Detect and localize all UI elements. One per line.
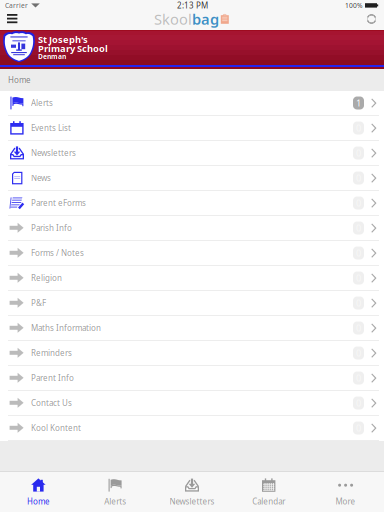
staticText: Parent Info — [31, 373, 74, 383]
button[interactable]: Alerts — [77, 472, 154, 512]
button[interactable]: Events List — [0, 116, 384, 141]
staticText: 1 — [356, 97, 361, 109]
button[interactable]: Home — [0, 472, 77, 512]
staticText: Carrier — [5, 1, 28, 10]
staticText: Calendar — [252, 496, 285, 507]
staticText: Newsletters — [31, 148, 76, 158]
button[interactable]: Alerts — [0, 91, 384, 116]
button[interactable]: Parish Info — [0, 216, 384, 241]
staticText: Maths Information — [31, 323, 101, 333]
button[interactable]: Reminders — [0, 341, 384, 366]
staticText: P&F — [31, 298, 46, 308]
staticText: More — [336, 496, 356, 507]
staticText: Parent eForms — [31, 198, 86, 208]
button[interactable]: Kool Kontent — [0, 416, 384, 441]
staticText: Newsletters — [169, 496, 214, 507]
staticText: Alerts — [31, 98, 53, 108]
staticText: Religion — [31, 273, 62, 283]
staticText: Contact Us — [31, 398, 72, 408]
staticText: Reminders — [31, 348, 72, 358]
button[interactable]: Newsletters — [0, 141, 384, 166]
button[interactable]: More — [307, 472, 384, 512]
button[interactable]: Maths Information — [0, 316, 384, 341]
button[interactable]: News — [0, 166, 384, 191]
button[interactable]: Newsletters — [154, 472, 230, 512]
button[interactable]: Forms / Notes — [0, 241, 384, 266]
staticText: Denman — [38, 52, 66, 61]
staticText: Events List — [31, 123, 71, 133]
staticText: Primary School — [38, 42, 108, 55]
staticText: Home — [8, 75, 31, 85]
button[interactable]: Parent eForms — [0, 191, 384, 216]
staticText: Skool — [154, 9, 192, 29]
staticText: Alerts — [104, 496, 126, 507]
staticText: Forms / Notes — [31, 248, 84, 258]
button[interactable]: Menu — [0, 11, 25, 27]
staticText: 100% — [345, 1, 363, 10]
button[interactable]: Calendar — [230, 472, 307, 512]
button[interactable]: P&F — [0, 291, 384, 316]
staticText: bag — [192, 9, 219, 29]
staticText: News — [31, 173, 51, 183]
button[interactable]: Contact Us — [0, 391, 384, 416]
button[interactable]: Religion — [0, 266, 384, 291]
staticText: Home — [27, 496, 50, 507]
staticText: St Joseph's — [38, 33, 88, 46]
staticText: Kool Kontent — [31, 423, 81, 433]
button[interactable]: Refresh — [359, 11, 384, 27]
staticText: Parish Info — [31, 223, 72, 233]
staticText: 2:13 PM — [177, 0, 208, 11]
button[interactable]: Parent Info — [0, 366, 384, 391]
